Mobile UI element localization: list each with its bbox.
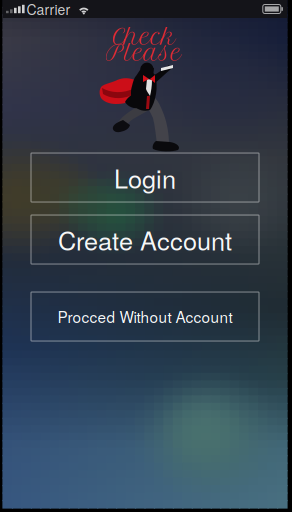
staticText: Login: [114, 159, 176, 196]
staticText: Please: [105, 40, 181, 66]
staticText: Procced Without Account: [57, 305, 232, 327]
button[interactable]: Login: [31, 153, 259, 202]
staticText: Carrier: [27, 0, 71, 19]
button[interactable]: Procced Without Account: [31, 292, 259, 341]
staticText: Create Account: [58, 221, 232, 258]
staticText: Check: [112, 24, 175, 50]
button[interactable]: Create Account: [31, 215, 259, 264]
